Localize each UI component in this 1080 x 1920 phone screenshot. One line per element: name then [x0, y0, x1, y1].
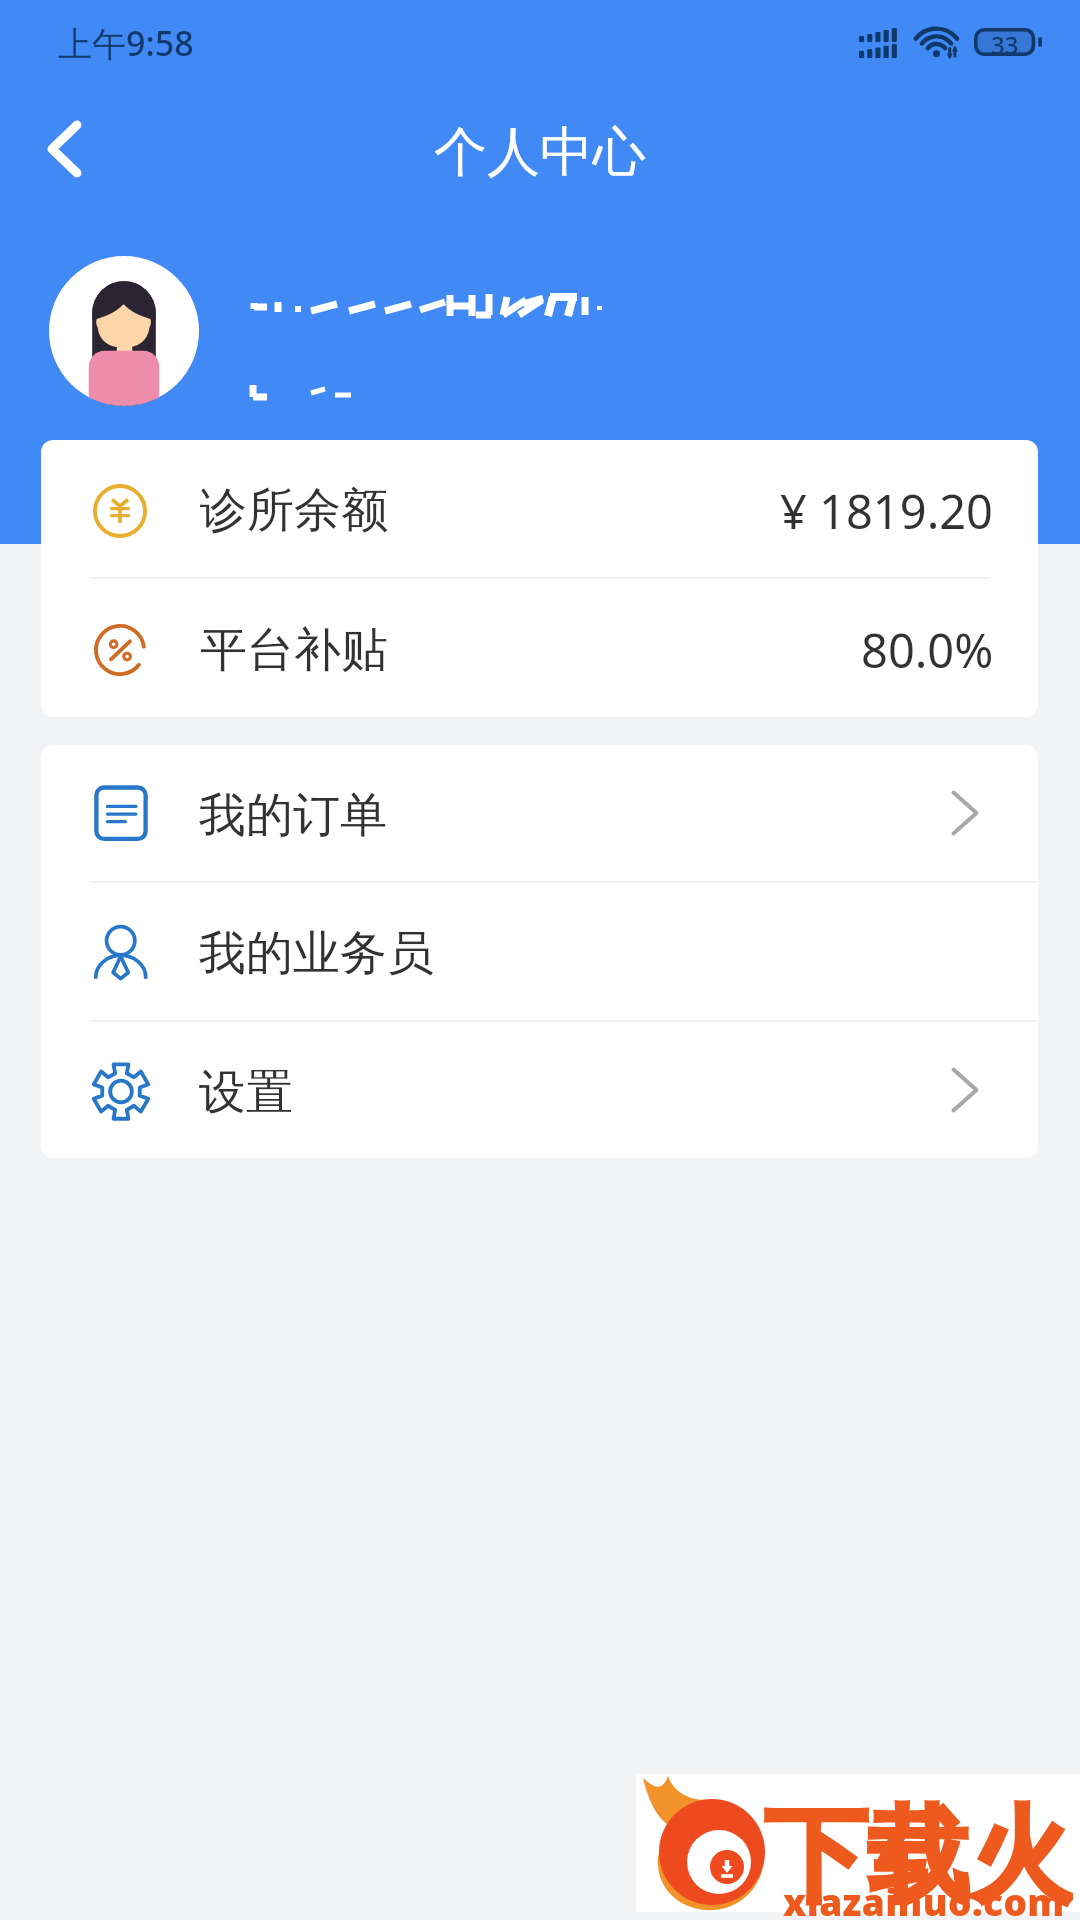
button[interactable]: 设置 [41, 1022, 1038, 1158]
staticText: 下载火 [764, 1792, 1073, 1916]
button[interactable]: 诊所余额 [41, 440, 1038, 577]
staticText: 设置 [199, 1063, 293, 1122]
staticText: 33 [991, 28, 1019, 56]
staticText: 我的业务员 [199, 924, 434, 983]
staticText: 个人中心 [434, 119, 646, 186]
staticText: xiazaihuo.com [783, 1876, 1065, 1916]
staticText: 80.0% [861, 618, 994, 682]
button[interactable]: Back [0, 86, 128, 212]
button[interactable]: 我的订单 [41, 745, 1038, 881]
staticText: 上午9:58 [58, 20, 194, 66]
button[interactable]: 我的业务员 [41, 883, 1038, 1020]
staticText: 我的订单 [199, 786, 387, 845]
staticText: 诊所余额 [200, 481, 388, 540]
staticText: 平台补贴 [200, 621, 388, 680]
button[interactable]: 平台补贴 [41, 579, 1038, 717]
staticText: ¥ 1819.20 [780, 479, 994, 543]
